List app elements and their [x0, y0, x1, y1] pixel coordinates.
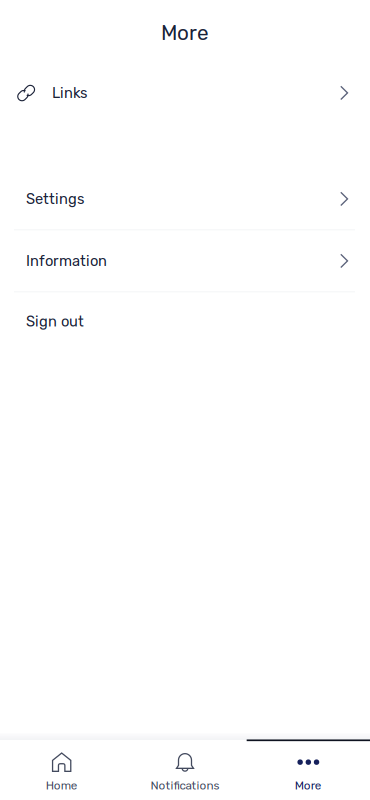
staticText: Notifications — [150, 779, 219, 792]
button[interactable]: Information — [0, 230, 370, 291]
button[interactable]: Notifications — [123, 740, 247, 800]
button[interactable]: Links — [0, 71, 370, 115]
staticText: Home — [46, 779, 78, 792]
staticText: Settings — [26, 190, 84, 208]
button[interactable]: More — [247, 740, 370, 800]
button[interactable]: Sign out — [0, 292, 370, 350]
staticText: More — [295, 779, 322, 792]
button[interactable]: Settings — [0, 168, 370, 229]
staticText: Sign out — [26, 313, 84, 330]
button[interactable]: Home — [0, 740, 123, 800]
staticText: More — [161, 21, 209, 45]
staticText: Links — [52, 84, 87, 102]
staticText: Information — [26, 252, 107, 270]
